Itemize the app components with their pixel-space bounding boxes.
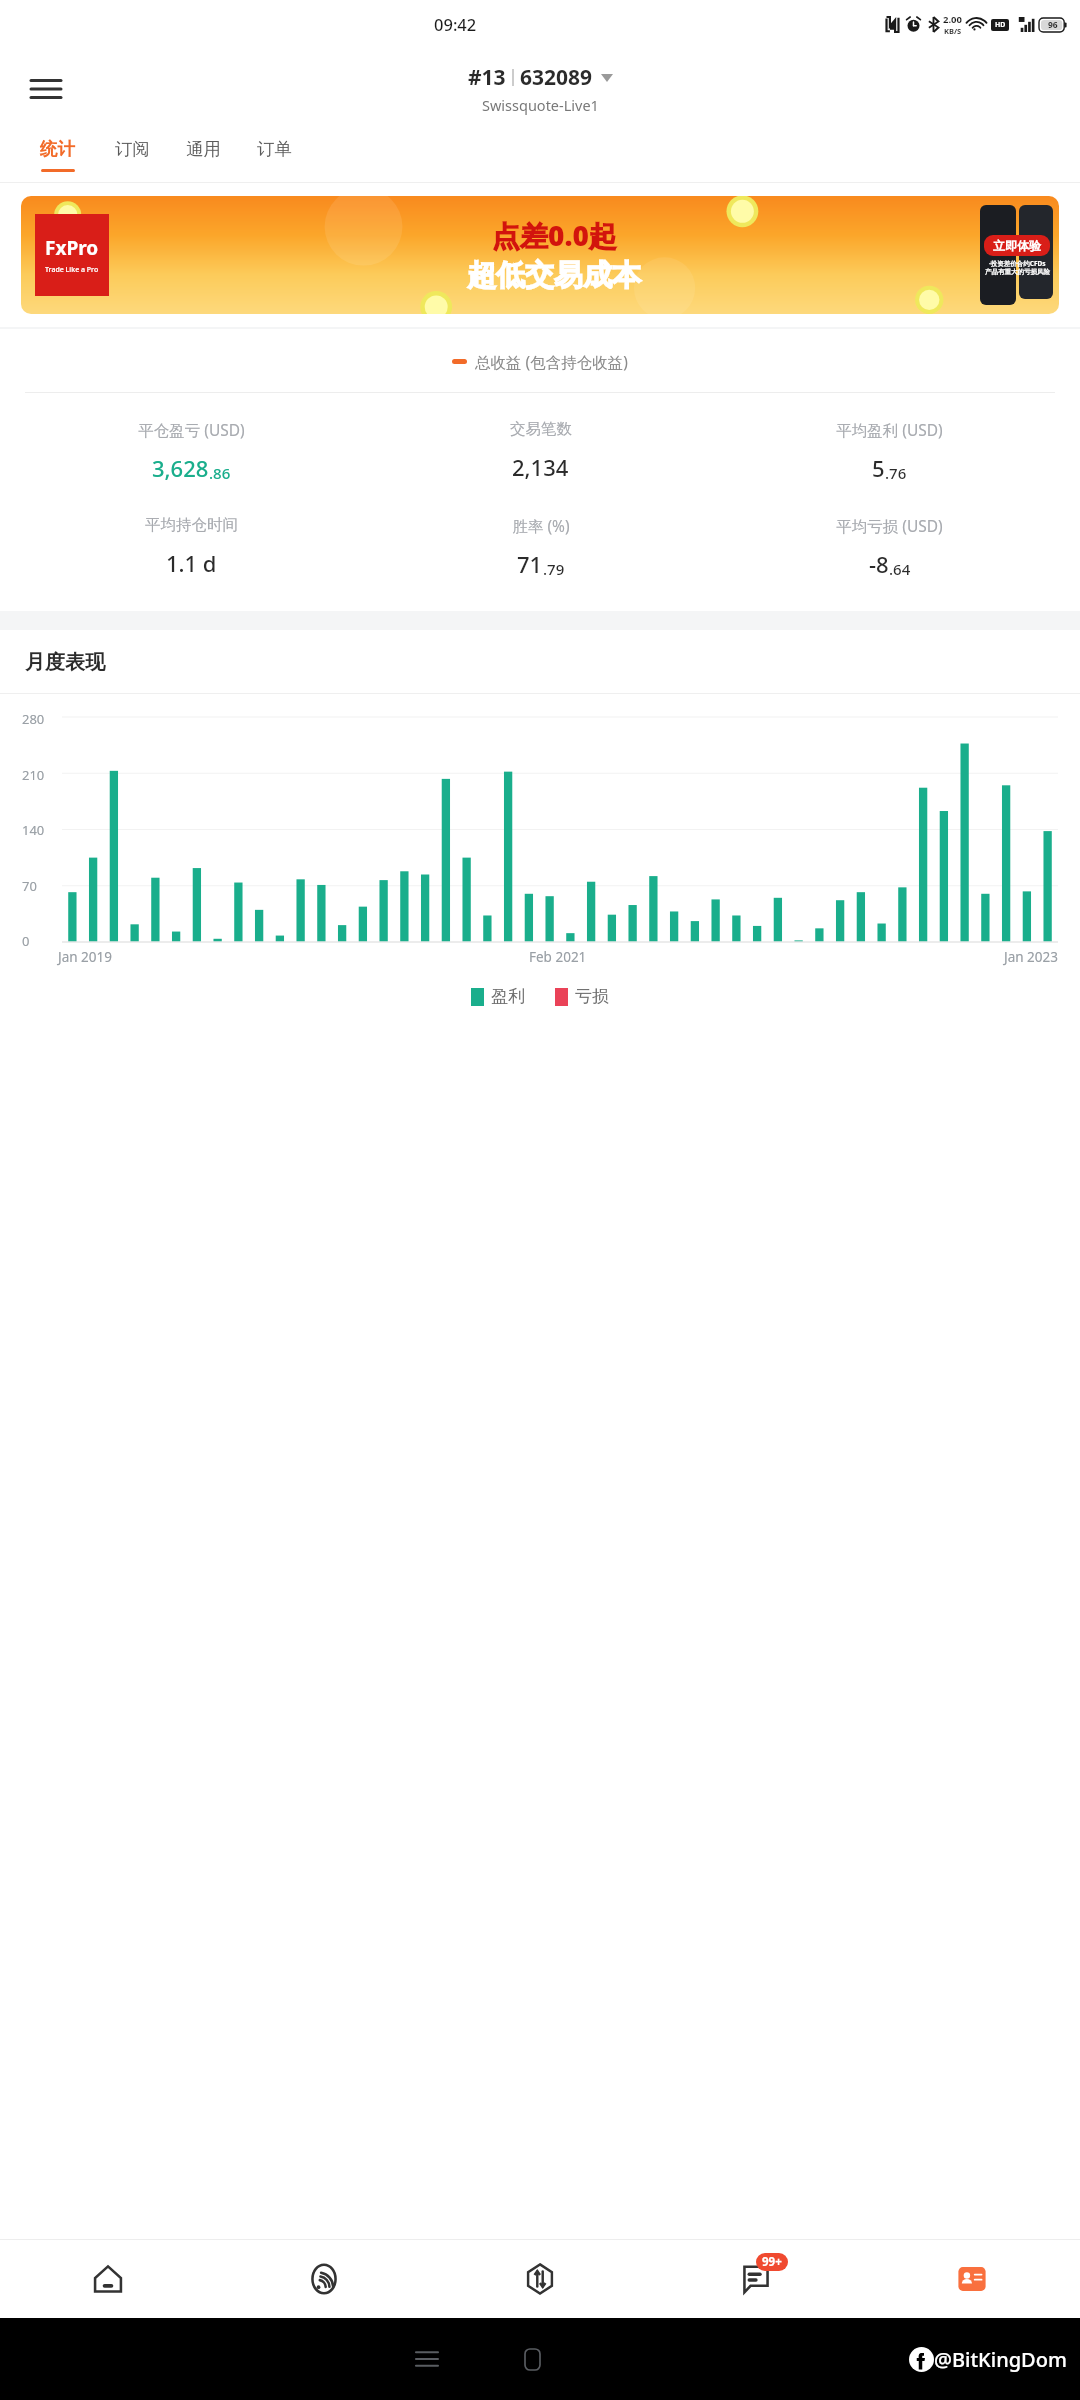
- button[interactable]: 总收益 (包含持仓收益): [0, 351, 1080, 372]
- button[interactable]: 订单: [239, 130, 310, 180]
- staticText: 1.1 d: [166, 548, 217, 578]
- staticText: Trade Like a Pro: [45, 265, 99, 275]
- staticText: 71: [517, 549, 543, 579]
- staticText: .79: [543, 559, 565, 579]
- staticText: 3,628: [152, 453, 209, 483]
- staticText: Jan 2019: [58, 948, 112, 966]
- staticText: 632089: [520, 63, 593, 92]
- staticText: 总收益 (包含持仓收益): [475, 351, 628, 372]
- button[interactable]: #13: [468, 63, 613, 115]
- staticText: 280: [22, 710, 45, 728]
- staticText: 订阅: [115, 138, 150, 160]
- button[interactable]: 统计: [22, 130, 93, 180]
- button[interactable]: 盈利: [471, 986, 525, 1007]
- staticText: @BitKingDom: [934, 2346, 1067, 2373]
- staticText: KB/S: [944, 26, 962, 36]
- staticText: 平仓盈亏 (USD): [138, 419, 245, 440]
- button[interactable]: Trade: [432, 2240, 648, 2318]
- staticText: 统计: [40, 138, 75, 160]
- button[interactable]: 亏损: [555, 986, 609, 1007]
- button[interactable]: Recents: [405, 2337, 449, 2381]
- staticText: Feb 2021: [529, 948, 587, 966]
- staticText: 立即体验: [993, 238, 1041, 253]
- staticText: 70: [22, 877, 37, 895]
- button[interactable]: FxPro: [21, 196, 1059, 314]
- button[interactable]: Signals: [216, 2240, 432, 2318]
- staticText: .76: [885, 463, 907, 483]
- button[interactable]: Profile: [864, 2240, 1080, 2318]
- staticText: FxPro: [45, 235, 99, 261]
- button[interactable]: 通用: [168, 130, 239, 180]
- staticText: 96: [1048, 19, 1058, 31]
- staticText: 210: [22, 766, 45, 784]
- staticText: 订单: [257, 138, 292, 160]
- staticText: 盈利: [491, 986, 525, 1007]
- staticText: .86: [209, 463, 231, 483]
- staticText: 平均亏损 (USD): [836, 515, 943, 536]
- staticText: 140: [22, 821, 45, 839]
- staticText: #13: [468, 63, 506, 92]
- staticText: 平均持仓时间: [145, 515, 238, 535]
- staticText: 通用: [186, 138, 221, 160]
- staticText: 0: [22, 932, 30, 950]
- staticText: 胜率 (%): [512, 515, 570, 536]
- staticText: 2,134: [512, 452, 569, 482]
- staticText: 99+: [762, 2254, 782, 2270]
- button[interactable]: Home: [0, 2240, 216, 2318]
- staticText: HD: [995, 20, 1006, 30]
- staticText: 5: [872, 453, 885, 483]
- button[interactable]: Menu: [22, 65, 70, 113]
- staticText: 2.00: [943, 13, 962, 26]
- staticText: 产品有重大的亏损风险: [985, 268, 1050, 276]
- button[interactable]: Messages: [648, 2240, 864, 2318]
- staticText: 亏损: [575, 986, 609, 1007]
- button[interactable]: Home: [510, 2337, 554, 2381]
- staticText: .64: [889, 559, 911, 579]
- staticText: 09:42: [434, 13, 477, 35]
- staticText: Swissquote-Live1: [482, 95, 599, 115]
- staticText: 交易笔数: [510, 419, 572, 439]
- staticText: 点差0.0起: [492, 216, 617, 254]
- staticText: 平均盈利 (USD): [836, 419, 943, 440]
- staticText: -8: [869, 549, 889, 579]
- staticText: 月度表现: [25, 650, 105, 675]
- staticText: Jan 2023: [1004, 948, 1058, 966]
- staticText: ·投资差价合约CFDs: [989, 259, 1046, 268]
- staticText: 超低交易成本: [467, 257, 641, 294]
- button[interactable]: 订阅: [97, 130, 168, 180]
